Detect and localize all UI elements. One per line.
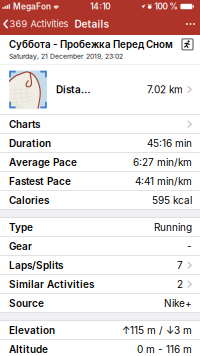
button[interactable]: Laps/Splits bbox=[0, 256, 200, 275]
staticText: 0 m - 116 m bbox=[137, 343, 192, 355]
staticText: Similar Activities bbox=[9, 278, 94, 290]
staticText: 2 bbox=[177, 278, 183, 290]
button[interactable]: Fastest Pace bbox=[0, 172, 200, 191]
staticText: Saturday, 21 December 2019, 23:02 bbox=[9, 52, 123, 60]
staticText: Nike+ bbox=[164, 297, 192, 309]
button[interactable]: Duration bbox=[0, 134, 200, 153]
button[interactable]: 369 Activities bbox=[0, 13, 73, 35]
staticText: Laps/Splits bbox=[9, 259, 63, 271]
staticText: Duration bbox=[9, 137, 51, 149]
staticText: ↑115 m / ↓3 m bbox=[122, 324, 192, 336]
button[interactable]: Type bbox=[0, 218, 200, 237]
staticText: 6:27 min/km bbox=[133, 156, 192, 168]
button[interactable]: Dista… bbox=[0, 64, 200, 115]
staticText: Charts bbox=[9, 118, 40, 130]
staticText: Calories bbox=[9, 194, 49, 206]
staticText: 7 bbox=[177, 259, 183, 271]
button[interactable]: Source bbox=[0, 294, 200, 313]
staticText: 7.02 km bbox=[147, 83, 183, 96]
staticText: Running bbox=[154, 221, 192, 233]
staticText: 14:10 bbox=[90, 1, 110, 11]
button[interactable]: Similar Activities bbox=[0, 275, 200, 294]
staticText: 595 kcal bbox=[152, 194, 192, 206]
staticText: Elevation bbox=[9, 324, 55, 336]
staticText: 4:41 min/km bbox=[135, 175, 192, 187]
staticText: Average Pace bbox=[9, 156, 77, 168]
staticText: 100 % bbox=[154, 1, 177, 11]
button[interactable]: Average Pace bbox=[0, 153, 200, 172]
button[interactable]: Gear bbox=[0, 237, 200, 256]
staticText: Gear bbox=[9, 240, 32, 252]
button[interactable]: Calories bbox=[0, 191, 200, 210]
staticText: Dista… bbox=[56, 83, 91, 96]
staticText: Altitude bbox=[9, 343, 48, 355]
button[interactable]: Charts bbox=[0, 115, 200, 134]
staticText: 45:16 min bbox=[147, 137, 192, 149]
button[interactable]: Elevation bbox=[0, 321, 200, 340]
staticText: Суббота - Пробежка Перед Сном bbox=[9, 38, 173, 50]
staticText: Type bbox=[9, 221, 33, 233]
button[interactable]: More options bbox=[181, 13, 200, 35]
staticText: Source bbox=[9, 297, 44, 309]
button[interactable]: Altitude bbox=[0, 340, 200, 356]
staticText: 369 Activities bbox=[10, 18, 69, 29]
staticText: Details bbox=[74, 18, 109, 30]
staticText: MegaFon bbox=[13, 1, 51, 11]
staticText: Fastest Pace bbox=[9, 175, 71, 187]
staticText: - bbox=[187, 240, 192, 252]
